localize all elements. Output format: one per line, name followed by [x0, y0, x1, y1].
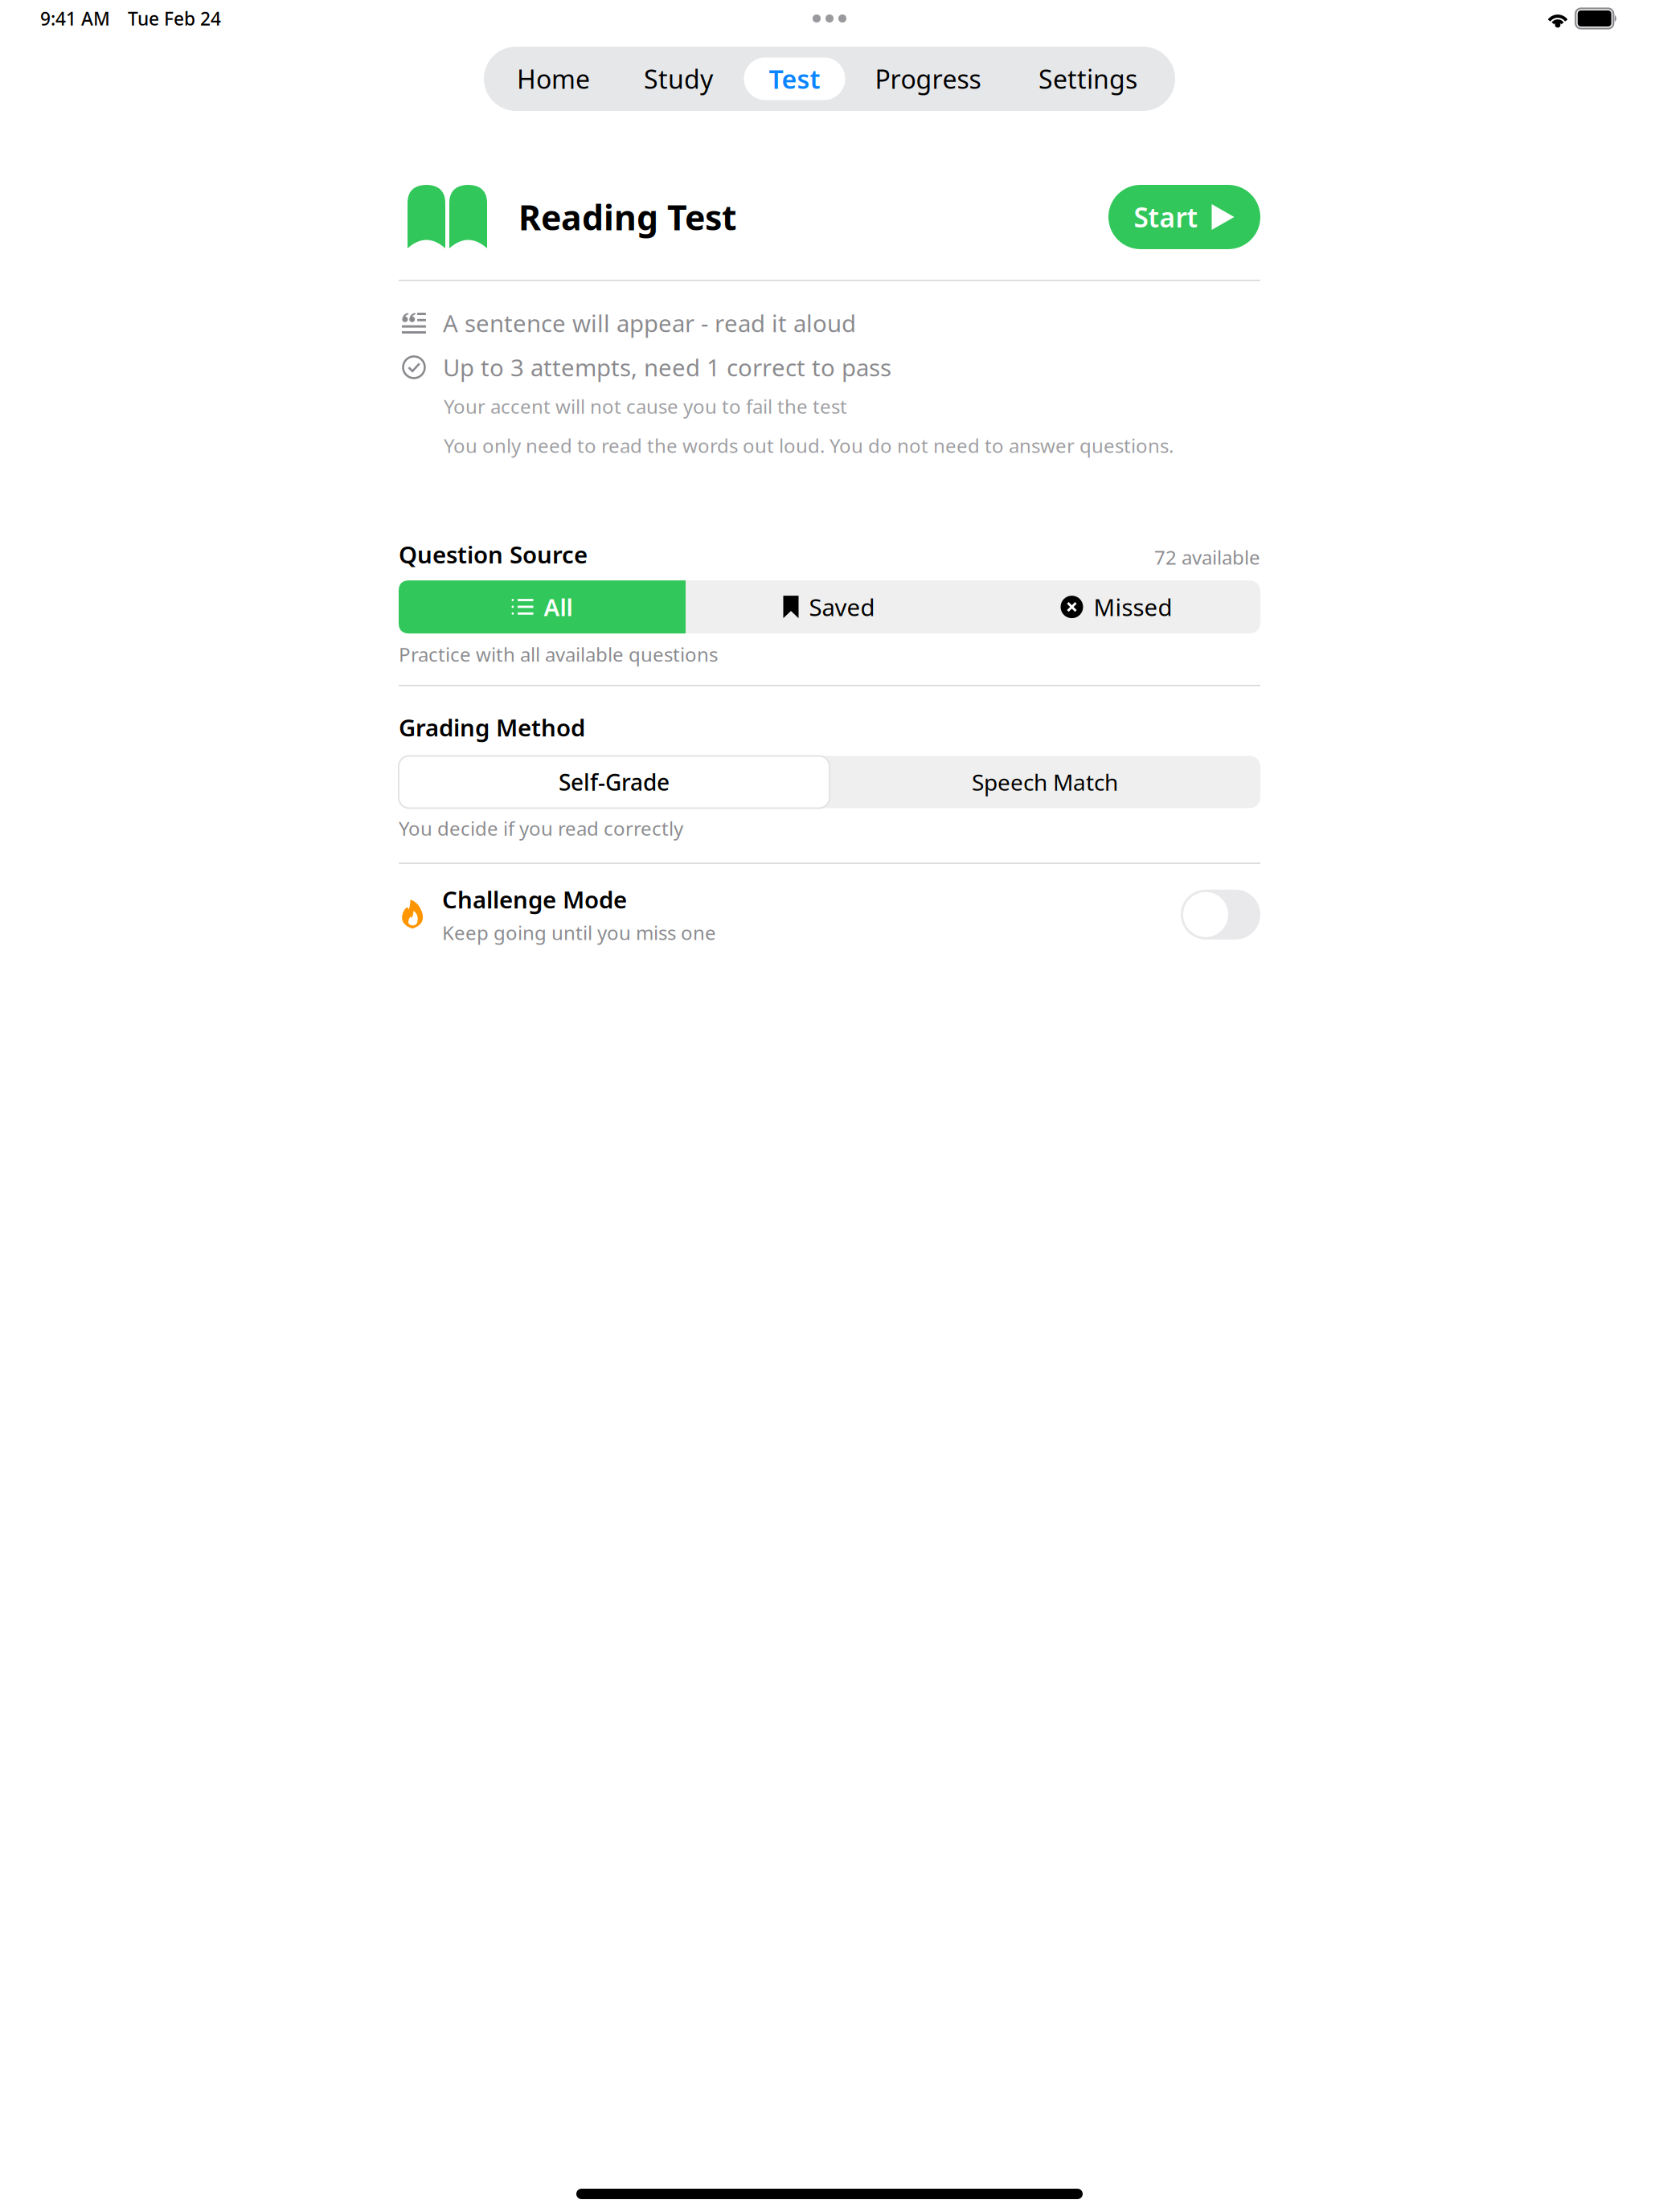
button[interactable]: All [399, 580, 686, 633]
staticText: Reading Test [518, 194, 737, 240]
button[interactable]: Self-Grade [399, 756, 829, 808]
button[interactable]: Study [623, 47, 734, 111]
staticText: Keep going until you miss one [442, 920, 716, 945]
button[interactable]: Challenge Mode [399, 882, 1181, 947]
staticText: All [544, 591, 573, 623]
button[interactable]: Test [734, 47, 855, 111]
staticText: You only need to read the words out loud… [444, 433, 1174, 458]
staticText: Your accent will not cause you to fail t… [444, 393, 847, 419]
staticText: 9:41 AM [40, 6, 110, 31]
staticText: Progress [875, 62, 981, 96]
staticText: Home [517, 62, 590, 96]
staticText: Challenge Mode [442, 884, 627, 915]
staticText: Speech Match [972, 767, 1118, 797]
button[interactable]: Saved [686, 580, 973, 633]
staticText: Question Source [399, 539, 588, 570]
staticText: Settings [1038, 62, 1137, 96]
staticText: Practice with all available questions [399, 641, 718, 667]
staticText: Grading Method [399, 712, 585, 743]
staticText: Tue Feb 24 [128, 6, 221, 31]
staticText: 72 available [1154, 544, 1260, 570]
button[interactable]: Speech Match [829, 756, 1260, 808]
staticText: Test [769, 62, 820, 96]
staticText: Study [644, 62, 713, 96]
staticText: Up to 3 attempts, need 1 correct to pass [443, 352, 891, 383]
button[interactable]: Progress [855, 47, 1001, 111]
button[interactable]: Missed [973, 580, 1260, 633]
staticText: Missed [1094, 591, 1172, 623]
staticText: Start [1134, 199, 1198, 235]
staticText: A sentence will appear - read it aloud [443, 307, 856, 339]
button[interactable]: Home [484, 47, 623, 111]
staticText: Self-Grade [559, 767, 670, 797]
button[interactable]: Start [1108, 185, 1260, 249]
staticText: Saved [809, 591, 875, 623]
button[interactable]: Settings [1001, 47, 1175, 111]
staticText: You decide if you read correctly [399, 815, 683, 841]
button[interactable]: Challenge Mode, off [1181, 890, 1260, 939]
